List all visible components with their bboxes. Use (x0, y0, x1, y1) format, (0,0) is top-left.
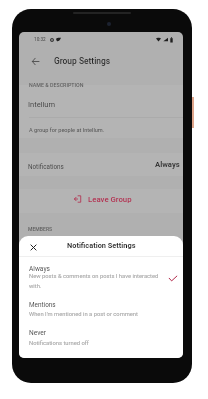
staticText: Never (29, 329, 47, 337)
staticText: with. (29, 283, 42, 290)
staticText: Notification Settings (67, 241, 136, 250)
staticText: Leave Group (88, 195, 132, 204)
button[interactable] (19, 85, 183, 117)
staticText: Always (155, 160, 180, 169)
staticText: Always (29, 265, 50, 273)
button[interactable] (19, 293, 183, 322)
staticText: Group Settings (54, 56, 111, 66)
staticText: Notifications (28, 163, 64, 170)
staticText: A group for people at Intellum. (29, 127, 105, 134)
staticText: Notifications turned off (29, 340, 89, 347)
staticText: New posts & comments on posts I have int… (29, 273, 159, 280)
staticText: MEMBERS (28, 226, 53, 232)
button[interactable] (71, 193, 136, 209)
staticText: Intellum (28, 100, 55, 109)
staticText: Mentions (29, 301, 56, 309)
button[interactable] (19, 257, 183, 293)
button[interactable]: Back (26, 52, 44, 70)
button[interactable]: Close (21, 238, 45, 257)
staticText: NAME & DESCRIPTION (29, 82, 84, 88)
staticText: 10:32 (34, 37, 46, 43)
button[interactable] (19, 322, 183, 352)
staticText: When I'm mentioned in a post or comment (29, 311, 138, 318)
button[interactable] (19, 153, 183, 176)
button[interactable] (19, 118, 183, 139)
